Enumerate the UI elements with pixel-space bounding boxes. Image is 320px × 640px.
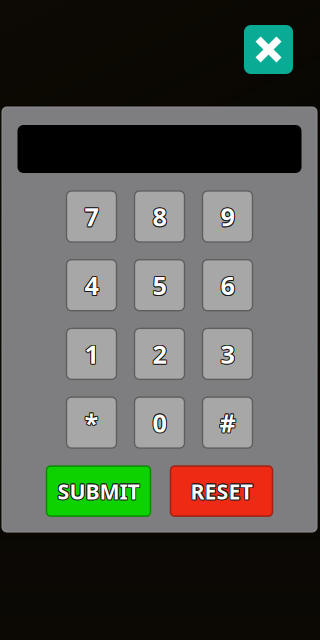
staticText: 5 [152, 268, 166, 302]
staticText: 9 [220, 200, 234, 233]
staticText: 3 [220, 337, 234, 371]
staticText: SUBMIT [57, 477, 139, 505]
staticText: * [84, 406, 98, 439]
button[interactable]: * [66, 397, 116, 448]
staticText: 1 [84, 337, 98, 371]
button[interactable]: 2 [134, 328, 184, 379]
button[interactable]: 3 [202, 328, 252, 379]
button[interactable]: SUBMIT [46, 466, 150, 516]
button[interactable]: 5 [134, 260, 184, 311]
button[interactable]: # [202, 397, 252, 448]
staticText: 8 [152, 200, 166, 233]
staticText: 4 [84, 268, 98, 302]
button[interactable]: Close [244, 25, 293, 74]
staticText: RESET [190, 477, 252, 505]
button[interactable]: 4 [66, 260, 116, 311]
button[interactable]: 7 [66, 191, 116, 242]
staticText: # [219, 406, 235, 439]
staticText: 7 [84, 200, 98, 233]
staticText: 2 [152, 337, 166, 371]
staticText: 6 [220, 268, 234, 302]
button[interactable]: 0 [134, 397, 184, 448]
staticText: 0 [152, 406, 166, 439]
button[interactable]: RESET [170, 466, 272, 516]
button[interactable]: 8 [134, 191, 184, 242]
button[interactable]: 9 [202, 191, 252, 242]
button[interactable]: 6 [202, 260, 252, 311]
button[interactable]: 1 [66, 328, 116, 379]
